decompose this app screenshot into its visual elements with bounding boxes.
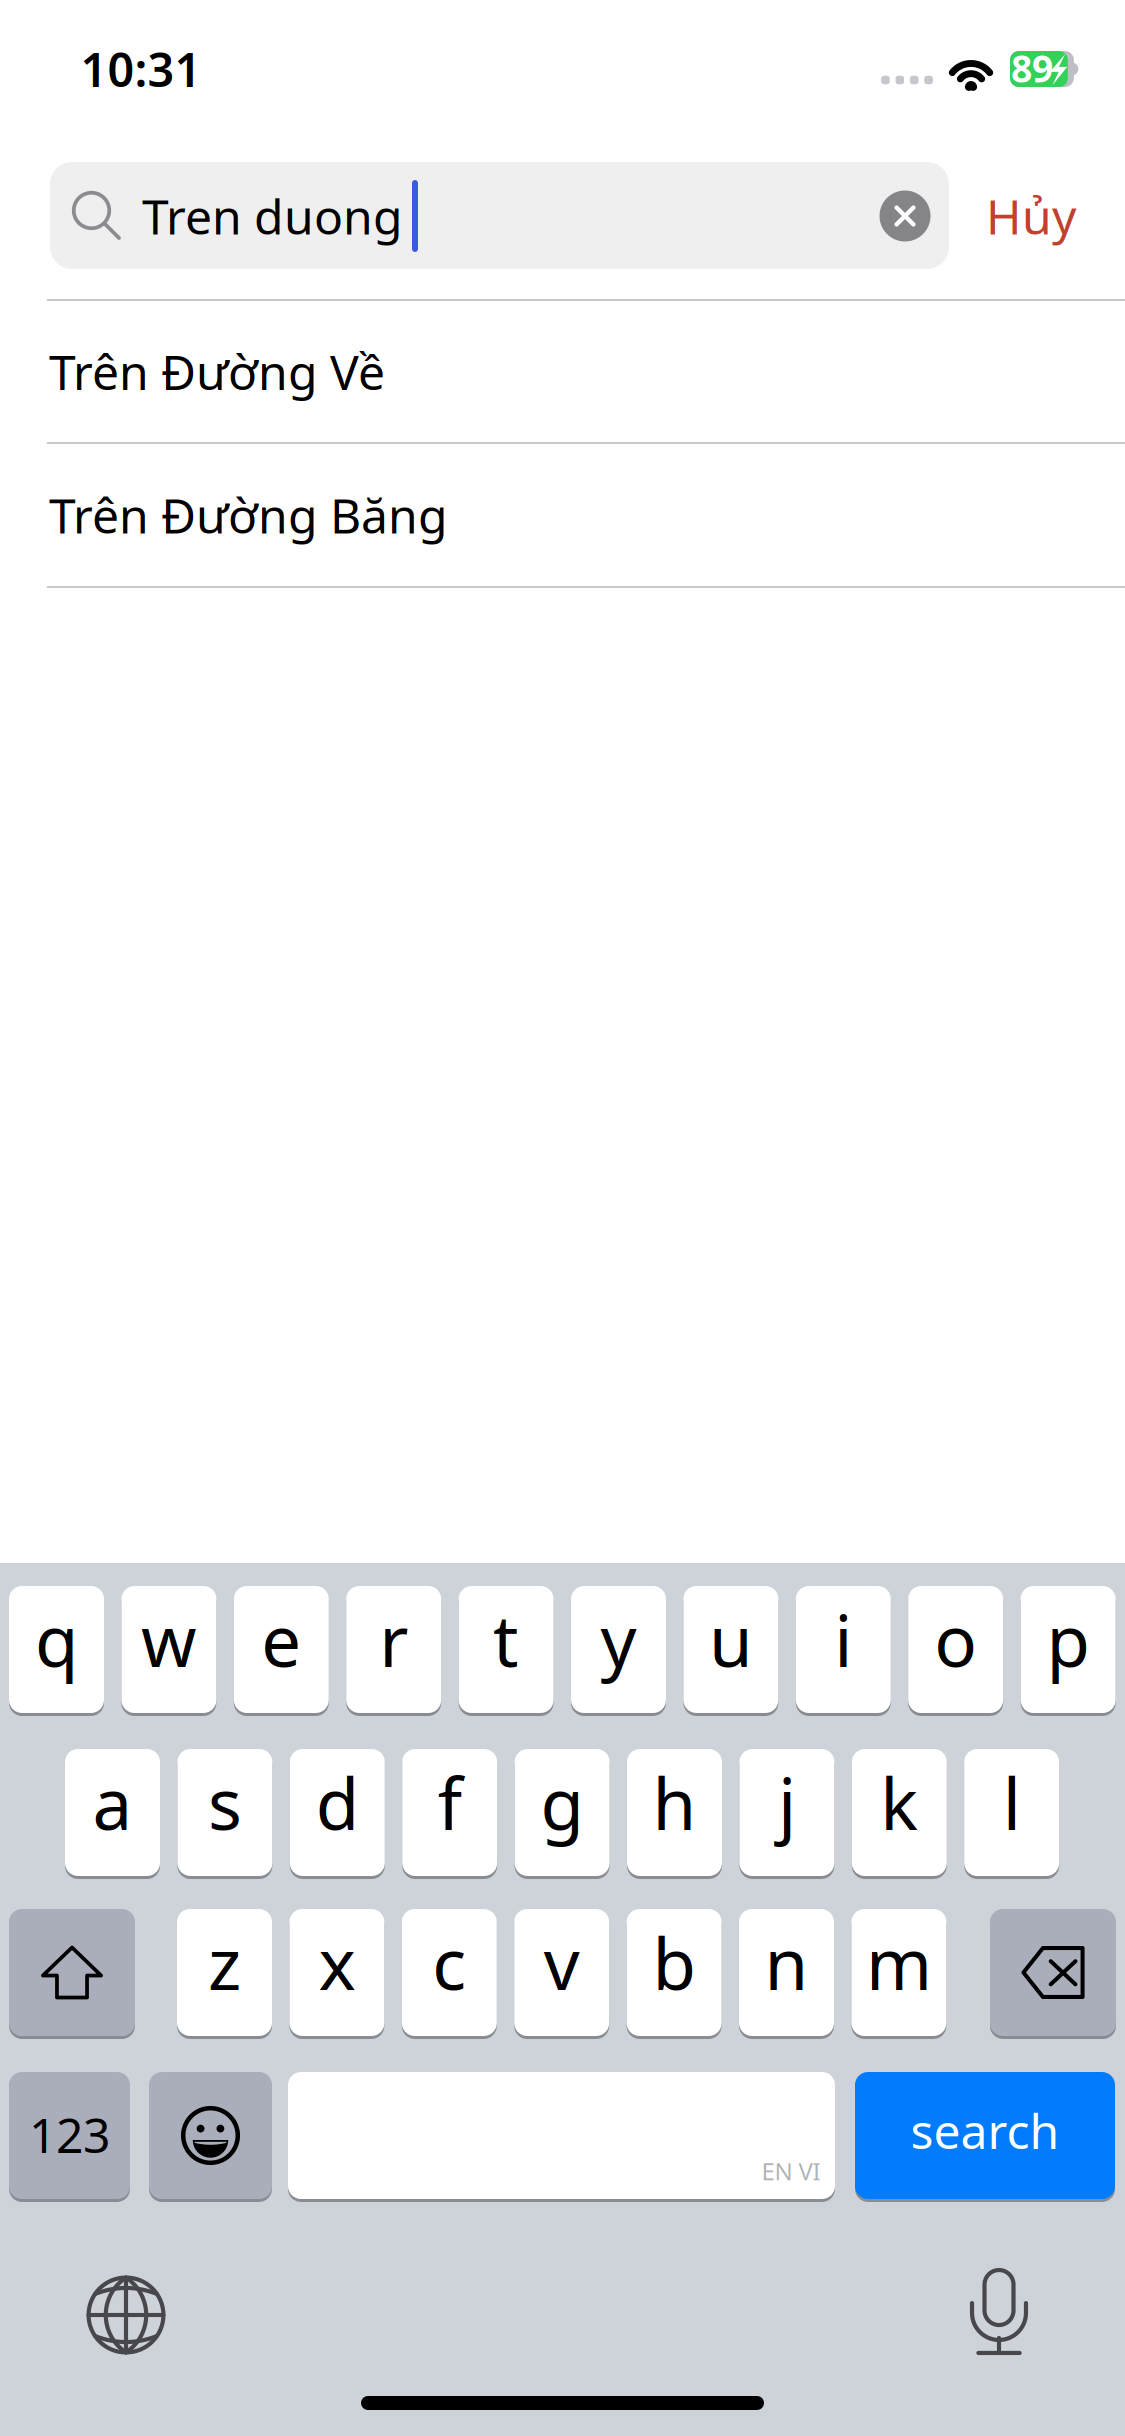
button[interactable]: r [346,1586,441,1713]
staticText: t [493,1593,519,1686]
staticText: 123 [29,2103,110,2166]
staticText: y [600,1593,636,1686]
button[interactable]: Space [288,2072,835,2199]
button[interactable]: l [964,1749,1059,1876]
button[interactable]: c [402,1909,497,2036]
staticText: s [208,1756,242,1849]
staticText: 10:31 [80,38,201,100]
button[interactable]: u [683,1586,778,1713]
button[interactable]: s [177,1749,272,1876]
button[interactable]: v [514,1909,609,2036]
staticText: i [834,1593,852,1686]
button[interactable]: a [65,1749,160,1876]
button[interactable]: Dictation [970,2270,1028,2356]
button[interactable]: f [402,1749,497,1876]
staticText: m [866,1916,932,2009]
staticText: l [1003,1756,1021,1849]
staticText: h [652,1756,696,1849]
button[interactable]: Shift [9,1909,135,2036]
staticText: n [764,1916,808,2009]
staticText: f [438,1756,462,1849]
staticText: EN VI [761,2155,820,2187]
staticText: 89 [1011,43,1053,93]
button[interactable]: d [290,1749,385,1876]
staticText: Trên Đường Về [49,340,385,403]
staticText: w [141,1593,197,1686]
button[interactable]: j [739,1749,834,1876]
button[interactable]: y [571,1586,666,1713]
button[interactable]: q [9,1586,104,1713]
staticText: z [208,1916,241,2009]
staticText: v [544,1916,580,2009]
button[interactable]: k [852,1749,947,1876]
button[interactable]: z [177,1909,272,2036]
staticText: p [1047,1593,1090,1686]
button[interactable]: Trên Đường Về [0,300,1125,443]
button[interactable]: o [908,1586,1003,1713]
staticText: g [541,1756,584,1849]
button[interactable]: Hủy [968,162,1094,269]
button[interactable]: h [627,1749,722,1876]
button[interactable]: Delete [990,1909,1116,2036]
staticText: u [709,1593,753,1686]
staticText: c [432,1916,466,2009]
button[interactable]: b [627,1909,722,2036]
button[interactable]: i [796,1586,891,1713]
button[interactable]: e [234,1586,329,1713]
staticText: a [92,1756,132,1849]
button[interactable]: t [459,1586,554,1713]
button[interactable]: g [515,1749,610,1876]
staticText: j [778,1756,796,1849]
button[interactable]: Trên Đường Băng [0,443,1125,587]
button[interactable]: n [739,1909,834,2036]
staticText: Tren duong [142,184,403,248]
button[interactable]: Clear search text [865,176,944,255]
staticText: o [934,1593,977,1686]
staticText: Hủy [986,184,1076,248]
button[interactable]: Emoji [149,2072,272,2199]
staticText: b [653,1916,696,2009]
button[interactable]: 123 [9,2072,130,2199]
staticText: q [35,1593,78,1686]
button[interactable]: Change keyboard [86,2275,166,2355]
staticText: r [379,1593,408,1686]
button[interactable]: search [855,2072,1115,2199]
button[interactable]: x [289,1909,384,2036]
staticText: search [910,2099,1059,2162]
button[interactable]: m [851,1909,946,2036]
button[interactable]: w [121,1586,216,1713]
staticText: e [261,1593,301,1686]
button[interactable]: p [1021,1586,1116,1713]
staticText: d [316,1756,359,1849]
staticText: x [318,1916,355,2009]
staticText: Trên Đường Băng [49,483,448,547]
staticText: k [880,1756,918,1849]
